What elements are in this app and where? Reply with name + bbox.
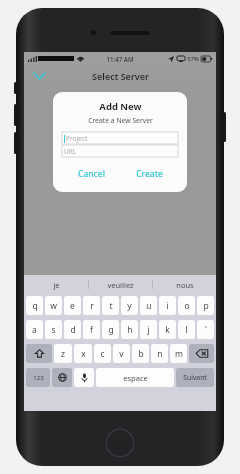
- staticText: Create: [136, 168, 163, 180]
- staticText: c: [100, 348, 105, 360]
- staticText: v: [119, 348, 124, 360]
- staticText: Cancel: [78, 168, 105, 180]
- button[interactable]: o: [178, 296, 195, 315]
- staticText: b: [138, 348, 144, 360]
- button[interactable]: Backspace: [189, 344, 214, 363]
- staticText: ’: [205, 324, 207, 336]
- button[interactable]: Suivant: [176, 368, 214, 387]
- staticText: g: [108, 324, 114, 336]
- staticText: 57%: [187, 55, 199, 63]
- button[interactable]: d: [64, 320, 81, 339]
- button[interactable]: a: [26, 320, 43, 339]
- button[interactable]: t: [102, 296, 119, 315]
- staticText: s: [51, 324, 56, 336]
- staticText: m: [175, 348, 183, 360]
- staticText: j: [147, 324, 150, 336]
- button[interactable]: h: [121, 320, 138, 339]
- staticText: d: [70, 324, 76, 336]
- button[interactable]: s: [45, 320, 62, 339]
- button[interactable]: b: [132, 344, 149, 363]
- button[interactable]: k: [159, 320, 176, 339]
- button[interactable]: n: [151, 344, 168, 363]
- button[interactable]: e: [64, 296, 81, 315]
- button[interactable]: Shift: [26, 344, 52, 363]
- staticText: l: [185, 324, 188, 336]
- staticText: k: [165, 324, 170, 336]
- button[interactable]: Home: [105, 428, 135, 458]
- button[interactable]: i: [159, 296, 176, 315]
- button[interactable]: Project: [62, 132, 178, 144]
- staticText: i: [166, 300, 169, 312]
- button[interactable]: Change keyboard language: [52, 368, 72, 387]
- button[interactable]: r: [83, 296, 100, 315]
- button[interactable]: nous: [153, 275, 216, 294]
- staticText: nous: [176, 280, 194, 290]
- button[interactable]: p: [197, 296, 214, 315]
- staticText: Select Server: [92, 70, 149, 82]
- button[interactable]: veuillez: [89, 275, 152, 294]
- button[interactable]: Dictation: [74, 368, 94, 387]
- button[interactable]: g: [102, 320, 119, 339]
- button[interactable]: URL: [62, 145, 178, 157]
- staticText: u: [146, 300, 152, 312]
- staticText: URL: [64, 147, 77, 156]
- button[interactable]: c: [94, 344, 111, 363]
- button[interactable]: Create: [120, 168, 178, 180]
- staticText: 123: [33, 374, 44, 382]
- staticText: e: [70, 300, 75, 312]
- button[interactable]: Dismiss: [30, 67, 48, 85]
- staticText: y: [127, 300, 132, 312]
- button[interactable]: je: [24, 275, 88, 294]
- button[interactable]: f: [83, 320, 100, 339]
- staticText: espace: [123, 373, 148, 383]
- staticText: Suivant: [183, 373, 207, 382]
- button[interactable]: Cancel: [62, 168, 120, 180]
- staticText: p: [203, 300, 209, 312]
- button[interactable]: q: [26, 296, 43, 315]
- staticText: w: [50, 300, 57, 312]
- staticText: f: [90, 324, 93, 336]
- button[interactable]: ’: [197, 320, 214, 339]
- staticText: x: [81, 348, 86, 360]
- staticText: veuillez: [107, 280, 134, 290]
- button[interactable]: w: [45, 296, 62, 315]
- staticText: t: [109, 300, 113, 312]
- staticText: je: [53, 280, 60, 290]
- staticText: a: [32, 324, 37, 336]
- button[interactable]: j: [140, 320, 157, 339]
- staticText: r: [90, 300, 94, 312]
- staticText: Create a New Server: [88, 116, 153, 125]
- button[interactable]: m: [170, 344, 187, 363]
- staticText: o: [184, 300, 190, 312]
- staticText: h: [127, 324, 133, 336]
- button[interactable]: y: [121, 296, 138, 315]
- staticText: No Servers: [101, 149, 140, 159]
- button[interactable]: v: [113, 344, 130, 363]
- staticText: n: [157, 348, 163, 360]
- button[interactable]: 123: [26, 368, 50, 387]
- staticText: Add New: [99, 100, 142, 113]
- button[interactable]: espace: [96, 368, 174, 387]
- button[interactable]: x: [74, 344, 92, 363]
- staticText: 11:47 AM: [106, 55, 134, 63]
- staticText: q: [32, 300, 38, 312]
- button[interactable]: u: [140, 296, 157, 315]
- button[interactable]: z: [54, 344, 72, 363]
- button[interactable]: l: [178, 320, 195, 339]
- staticText: z: [61, 348, 65, 360]
- staticText: Project: [66, 134, 88, 143]
